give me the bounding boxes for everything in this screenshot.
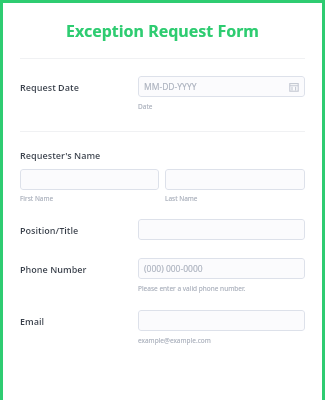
button[interactable]: (000) 000-0000: [138, 258, 305, 279]
button[interactable]: [20, 169, 159, 190]
staticText: Last Name: [165, 194, 198, 203]
other: Pick date: [289, 82, 299, 92]
staticText: Position/Title: [20, 224, 79, 236]
staticText: First Name: [20, 194, 54, 203]
staticText: Exception Request Form: [66, 20, 259, 42]
button[interactable]: [138, 219, 305, 240]
staticText: Requester's Name: [20, 149, 101, 161]
button[interactable]: [165, 169, 305, 190]
staticText: (000) 000-0000: [144, 263, 203, 275]
button[interactable]: MM-DD-YYYY: [138, 76, 305, 97]
staticText: example@example.com: [138, 336, 211, 345]
staticText: Request Date: [20, 81, 79, 93]
staticText: MM-DD-YYYY: [144, 81, 197, 93]
staticText: Phone Number: [20, 263, 87, 275]
staticText: Please enter a valid phone number.: [138, 284, 246, 293]
button[interactable]: [138, 310, 305, 331]
staticText: Date: [138, 102, 153, 111]
staticText: Email: [20, 315, 45, 327]
